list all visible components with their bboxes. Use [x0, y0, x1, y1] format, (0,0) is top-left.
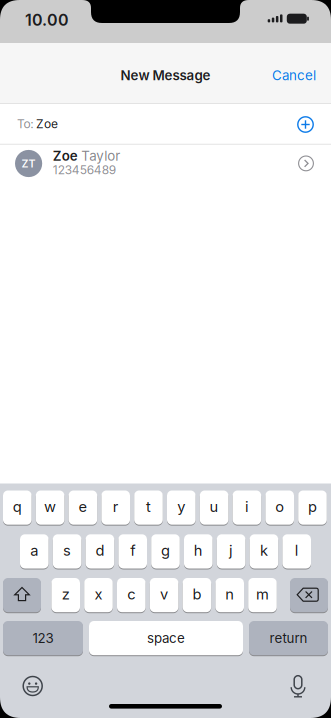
button[interactable]: v	[150, 578, 178, 613]
button[interactable]: Shift	[3, 578, 41, 613]
button[interactable]: b	[183, 578, 211, 613]
button[interactable]: h	[184, 534, 213, 569]
button[interactable]: a	[20, 534, 49, 569]
staticText: p	[308, 498, 317, 515]
staticText: b	[192, 585, 201, 603]
staticText: k	[260, 542, 268, 559]
button[interactable]: r	[101, 490, 130, 526]
staticText: x	[94, 585, 102, 603]
button[interactable]: k	[250, 534, 278, 569]
staticText: space	[147, 630, 185, 646]
staticText: i	[245, 498, 249, 515]
button[interactable]: f	[118, 534, 147, 569]
staticText: w	[44, 498, 56, 515]
button[interactable]: j	[217, 534, 245, 569]
button[interactable]: Add Contact	[296, 115, 314, 133]
button[interactable]: q	[3, 490, 32, 526]
staticText: s	[63, 542, 71, 559]
button[interactable]: Emoji	[22, 675, 44, 697]
staticText: n	[225, 585, 234, 603]
staticText: Zoe	[53, 148, 78, 164]
button[interactable]: p	[298, 490, 327, 526]
staticText: 123	[32, 630, 53, 646]
staticText: l	[295, 542, 299, 559]
button[interactable]: o	[265, 490, 294, 526]
staticText: v	[160, 585, 168, 603]
staticText: 123456489	[53, 163, 116, 177]
button[interactable]: y	[167, 490, 196, 526]
button[interactable]: return	[249, 621, 328, 656]
staticText: y	[177, 498, 185, 515]
staticText: ZT	[22, 157, 36, 170]
staticText: q	[13, 498, 22, 515]
staticText: return	[269, 630, 307, 646]
button[interactable]: w	[36, 490, 64, 526]
button[interactable]: e	[69, 490, 97, 526]
button[interactable]: u	[200, 490, 228, 526]
staticText: d	[95, 542, 104, 559]
button[interactable]: s	[53, 534, 81, 569]
button[interactable]: 123	[3, 621, 83, 656]
button[interactable]: t	[134, 490, 163, 526]
button[interactable]: x	[84, 578, 113, 613]
staticText: z	[62, 585, 70, 603]
staticText: New Message	[120, 68, 210, 83]
button[interactable]: l	[282, 534, 311, 569]
button[interactable]: n	[215, 578, 244, 613]
button[interactable]: z	[51, 578, 80, 613]
button[interactable]: g	[151, 534, 180, 569]
staticText: h	[194, 542, 203, 559]
staticText: Cancel	[272, 68, 316, 83]
staticText: t	[146, 498, 151, 515]
staticText: 10.00	[25, 11, 69, 29]
staticText: u	[210, 498, 219, 515]
staticText: Zoe	[36, 117, 58, 131]
staticText: o	[275, 498, 284, 515]
button[interactable]: i	[233, 490, 261, 526]
button[interactable]: Contact Info	[298, 155, 314, 171]
staticText: g	[161, 542, 170, 559]
staticText: f	[130, 542, 135, 559]
staticText: e	[78, 498, 87, 515]
button[interactable]: Delete	[290, 578, 328, 613]
button[interactable]: To: Zoe	[0, 104, 331, 144]
button[interactable]: d	[86, 534, 114, 569]
button[interactable]: m	[248, 578, 277, 613]
staticText: r	[113, 498, 119, 515]
button[interactable]: Cancel	[226, 60, 316, 90]
button[interactable]: c	[117, 578, 146, 613]
button[interactable]: ZT	[0, 144, 331, 185]
staticText: To:	[17, 117, 33, 131]
staticText: m	[256, 585, 269, 603]
staticText: Taylor	[81, 148, 120, 164]
button[interactable]: Dictate	[287, 674, 309, 698]
staticText: j	[229, 542, 233, 559]
staticText: a	[30, 542, 38, 559]
button[interactable]: space	[89, 621, 243, 656]
staticText: c	[127, 585, 135, 603]
